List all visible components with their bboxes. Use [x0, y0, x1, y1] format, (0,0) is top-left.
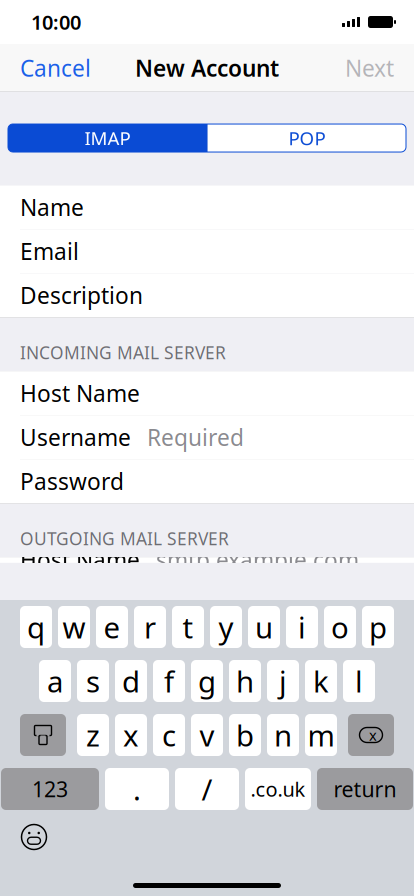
staticText: 123 [32, 775, 68, 803]
button[interactable]: return [317, 768, 413, 810]
staticText: b [236, 715, 254, 754]
button[interactable]: f [153, 660, 185, 702]
button[interactable]: Host Name [0, 371, 414, 415]
button[interactable]: h [229, 660, 261, 702]
button[interactable]: POP [208, 124, 406, 152]
staticText: q [27, 607, 45, 646]
button[interactable]: z [77, 714, 109, 756]
staticText: z [86, 715, 100, 754]
button[interactable]: Password [0, 459, 414, 503]
staticText: return [333, 775, 396, 803]
button[interactable]: Shift [20, 714, 66, 756]
staticText: n [274, 715, 292, 754]
button[interactable]: Email [0, 229, 414, 273]
button[interactable]: .co.uk [245, 768, 311, 810]
button[interactable]: a [39, 660, 71, 702]
staticText: m [307, 715, 334, 754]
staticText: l [355, 661, 363, 700]
button[interactable]: y [210, 606, 242, 648]
staticText: j [279, 661, 287, 700]
staticText: Cancel [20, 53, 91, 83]
staticText: Username [20, 422, 131, 452]
button[interactable]: q [20, 606, 52, 648]
button[interactable]: / [175, 768, 239, 810]
staticText: Required [147, 422, 244, 452]
staticText: t [182, 607, 193, 646]
staticText: Description [20, 280, 143, 310]
button[interactable]: t [172, 606, 204, 648]
staticText: Host Name [20, 545, 140, 575]
staticText: a [47, 661, 63, 700]
button[interactable]: b [229, 714, 261, 756]
button[interactable]: u [248, 606, 280, 648]
button[interactable]: e [96, 606, 128, 648]
staticText: IMAP [84, 126, 130, 150]
staticText: INCOMING MAIL SERVER [20, 341, 226, 364]
button[interactable]: k [305, 660, 337, 702]
button[interactable]: Username [0, 415, 414, 459]
staticText: OUTGOING MAIL SERVER [20, 527, 229, 550]
staticText: v [199, 715, 214, 754]
staticText: r [144, 607, 156, 646]
staticText: k [313, 661, 329, 700]
button[interactable]: Host Name [0, 538, 414, 582]
button[interactable]: Delete [348, 714, 394, 756]
button[interactable]: j [267, 660, 299, 702]
button[interactable]: i [286, 606, 318, 648]
button[interactable]: Next [325, 41, 414, 95]
button[interactable]: m [305, 714, 337, 756]
button[interactable]: Emoji keyboard [14, 820, 54, 854]
staticText: h [236, 661, 254, 700]
staticText: New Account [135, 53, 279, 83]
button[interactable]: . [105, 768, 169, 810]
button[interactable]: 123 [1, 768, 99, 810]
staticText: d [122, 661, 140, 700]
staticText: Next [345, 53, 394, 83]
staticText: x [123, 715, 139, 754]
button[interactable]: n [267, 714, 299, 756]
button[interactable]: Cancel [0, 41, 111, 95]
staticText: . [133, 769, 141, 808]
button[interactable]: Description [0, 273, 414, 317]
button[interactable]: g [191, 660, 223, 702]
button[interactable]: x [115, 714, 147, 756]
staticText: e [103, 607, 120, 646]
staticText: Host Name [20, 378, 140, 408]
staticText: smtp.example.com [156, 545, 359, 575]
button[interactable]: IMAP [8, 124, 207, 152]
button[interactable]: d [115, 660, 147, 702]
staticText: y [218, 607, 233, 646]
button[interactable]: r [134, 606, 166, 648]
button[interactable]: p [362, 606, 394, 648]
staticText: POP [288, 126, 325, 150]
button[interactable]: o [324, 606, 356, 648]
staticText: w [62, 607, 85, 646]
staticText: .co.uk [250, 776, 305, 802]
staticText: g [198, 661, 216, 700]
button[interactable]: w [58, 606, 90, 648]
staticText: u [255, 607, 273, 646]
button[interactable]: c [153, 714, 185, 756]
staticText: / [201, 769, 212, 808]
staticText: c [162, 715, 176, 754]
staticText: Name [20, 192, 84, 222]
button[interactable]: l [343, 660, 375, 702]
staticText: p [369, 607, 387, 646]
staticText: Email [20, 236, 79, 266]
staticText: f [164, 661, 174, 700]
button[interactable]: v [191, 714, 223, 756]
staticText: 10:00 [31, 9, 81, 35]
staticText: o [331, 607, 349, 646]
staticText: i [298, 607, 306, 646]
staticText: Password [20, 466, 124, 496]
button[interactable]: s [77, 660, 109, 702]
staticText: s [86, 661, 100, 700]
staticText: x [369, 725, 377, 745]
button[interactable]: Name [0, 185, 414, 229]
